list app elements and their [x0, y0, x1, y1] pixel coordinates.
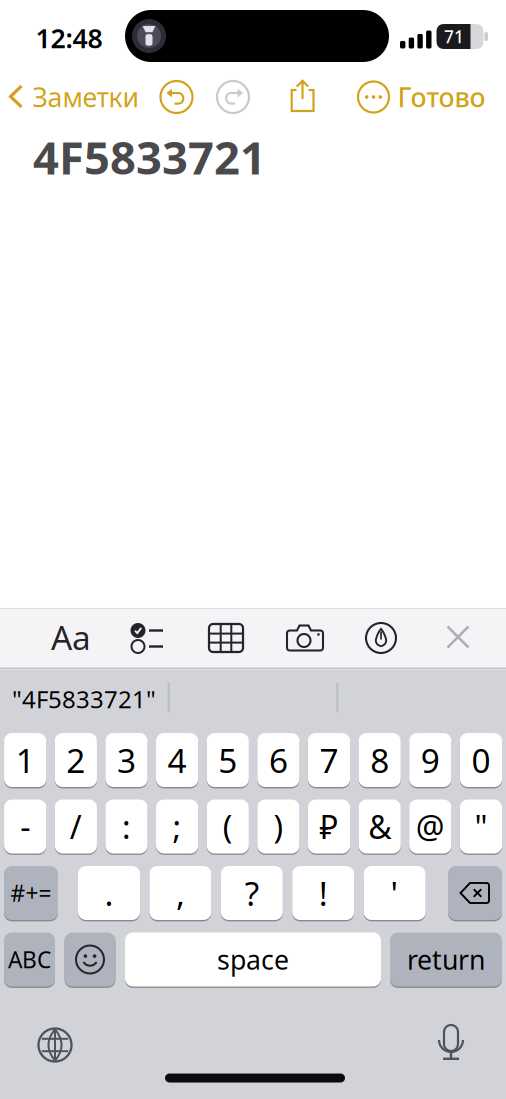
button[interactable]: [366, 623, 396, 653]
button[interactable]: 7: [308, 732, 350, 788]
button[interactable]: space: [125, 931, 381, 987]
button[interactable]: [217, 81, 249, 113]
button[interactable]: 0: [460, 732, 502, 788]
staticText: 1: [16, 738, 35, 782]
button[interactable]: ?: [221, 865, 283, 921]
staticText: @: [416, 805, 445, 848]
button[interactable]: /: [55, 798, 97, 854]
staticText: &: [368, 805, 391, 848]
button[interactable]: "4F5833721": [1, 668, 166, 730]
staticText: ₽: [319, 805, 338, 848]
staticText: .: [104, 871, 113, 915]
staticText: ': [391, 871, 399, 915]
button[interactable]: 5: [207, 732, 249, 788]
button[interactable]: Aa: [51, 615, 91, 659]
staticText: Готово: [397, 79, 485, 115]
button[interactable]: !: [292, 865, 354, 921]
staticText: 7: [319, 738, 338, 782]
button[interactable]: ;: [156, 798, 198, 854]
button[interactable]: #+=: [4, 865, 58, 921]
staticText: 4F5833721: [33, 127, 266, 187]
staticText: (: [223, 805, 233, 848]
button[interactable]: 4: [156, 732, 198, 788]
button[interactable]: 6: [257, 732, 299, 788]
staticText: "4F5833721": [12, 683, 156, 715]
staticText: :: [122, 805, 131, 848]
staticText: 6: [269, 738, 288, 782]
staticText: ?: [245, 871, 259, 915]
button[interactable]: (: [207, 798, 249, 854]
button[interactable]: 3: [105, 732, 148, 788]
button[interactable]: @: [409, 798, 451, 854]
button[interactable]: [446, 625, 470, 649]
staticText: ": [474, 805, 487, 848]
button[interactable]: [38, 1028, 71, 1061]
staticText: space: [217, 942, 289, 977]
button[interactable]: ABC: [4, 931, 55, 987]
button[interactable]: [287, 623, 323, 652]
button[interactable]: [209, 624, 243, 652]
button[interactable]: ,: [149, 865, 211, 921]
staticText: 0: [471, 738, 490, 782]
button[interactable]: &: [359, 798, 401, 854]
button[interactable]: ₽: [308, 798, 350, 854]
button[interactable]: ': [364, 865, 426, 921]
staticText: !: [319, 871, 328, 915]
staticText: 3: [117, 738, 136, 782]
staticText: 4: [168, 738, 187, 782]
button[interactable]: [358, 81, 389, 112]
button[interactable]: 9: [409, 732, 451, 788]
button[interactable]: [448, 865, 502, 921]
button[interactable]: [287, 79, 317, 113]
button[interactable]: Готово: [360, 79, 485, 115]
button[interactable]: [130, 622, 164, 653]
staticText: Aa: [51, 615, 91, 659]
button[interactable]: 1: [4, 732, 46, 788]
button[interactable]: ): [257, 798, 299, 854]
staticText: 5: [218, 738, 237, 782]
button[interactable]: [160, 81, 192, 113]
staticText: 9: [421, 738, 440, 782]
staticText: -: [20, 805, 30, 848]
staticText: 8: [370, 738, 389, 782]
button[interactable]: return: [390, 931, 502, 987]
staticText: 12:48: [35, 20, 102, 56]
staticText: ,: [176, 871, 185, 915]
staticText: Заметки: [32, 79, 139, 115]
button[interactable]: [436, 1025, 466, 1061]
button[interactable]: ": [460, 798, 502, 854]
button[interactable]: [64, 931, 115, 987]
staticText: ): [273, 805, 283, 848]
button[interactable]: -: [4, 798, 46, 854]
staticText: ;: [173, 805, 182, 848]
button[interactable]: 8: [359, 732, 401, 788]
staticText: 2: [66, 738, 85, 782]
staticText: 71: [444, 25, 464, 48]
button[interactable]: 2: [55, 732, 97, 788]
button[interactable]: .: [78, 865, 140, 921]
staticText: return: [407, 942, 485, 977]
staticText: /: [70, 805, 82, 848]
button[interactable]: Заметки: [8, 79, 173, 115]
staticText: #+=: [10, 878, 51, 908]
staticText: ABC: [8, 944, 51, 974]
button[interactable]: :: [105, 798, 148, 854]
